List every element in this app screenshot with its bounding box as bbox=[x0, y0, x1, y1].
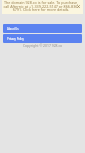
button[interactable]: Dismiss notice bbox=[76, 4, 81, 9]
staticText: The domain 928.co is for sale. To purcha… bbox=[3, 0, 79, 12]
staticText: Privacy Policy bbox=[7, 37, 24, 41]
staticText: Copyright © 2017 928.co bbox=[0, 43, 85, 48]
button[interactable]: About Us bbox=[3, 24, 82, 33]
button[interactable]: The domain 928.co is for sale. To purcha… bbox=[2, 0, 83, 14]
button[interactable]: Privacy Policy bbox=[3, 34, 82, 43]
staticText: About Us bbox=[7, 27, 19, 31]
